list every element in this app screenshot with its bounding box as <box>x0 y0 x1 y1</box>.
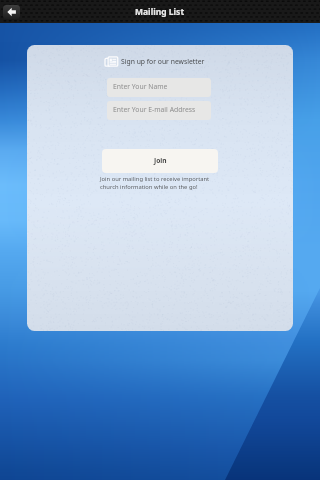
staticText: Mailing List <box>135 6 185 18</box>
staticText: Enter Your Name <box>113 82 168 91</box>
button[interactable]: Join <box>102 149 218 173</box>
staticText: Join our mailing list to receive importa… <box>100 175 210 191</box>
button[interactable]: Enter Your E-mail Address <box>107 101 211 120</box>
staticText: Sign up for our newsletter <box>121 57 205 66</box>
staticText: Join <box>154 156 167 165</box>
staticText: Enter Your E-mail Address <box>113 105 196 114</box>
button[interactable]: Back <box>3 5 20 19</box>
button[interactable]: Enter Your Name <box>107 78 211 97</box>
